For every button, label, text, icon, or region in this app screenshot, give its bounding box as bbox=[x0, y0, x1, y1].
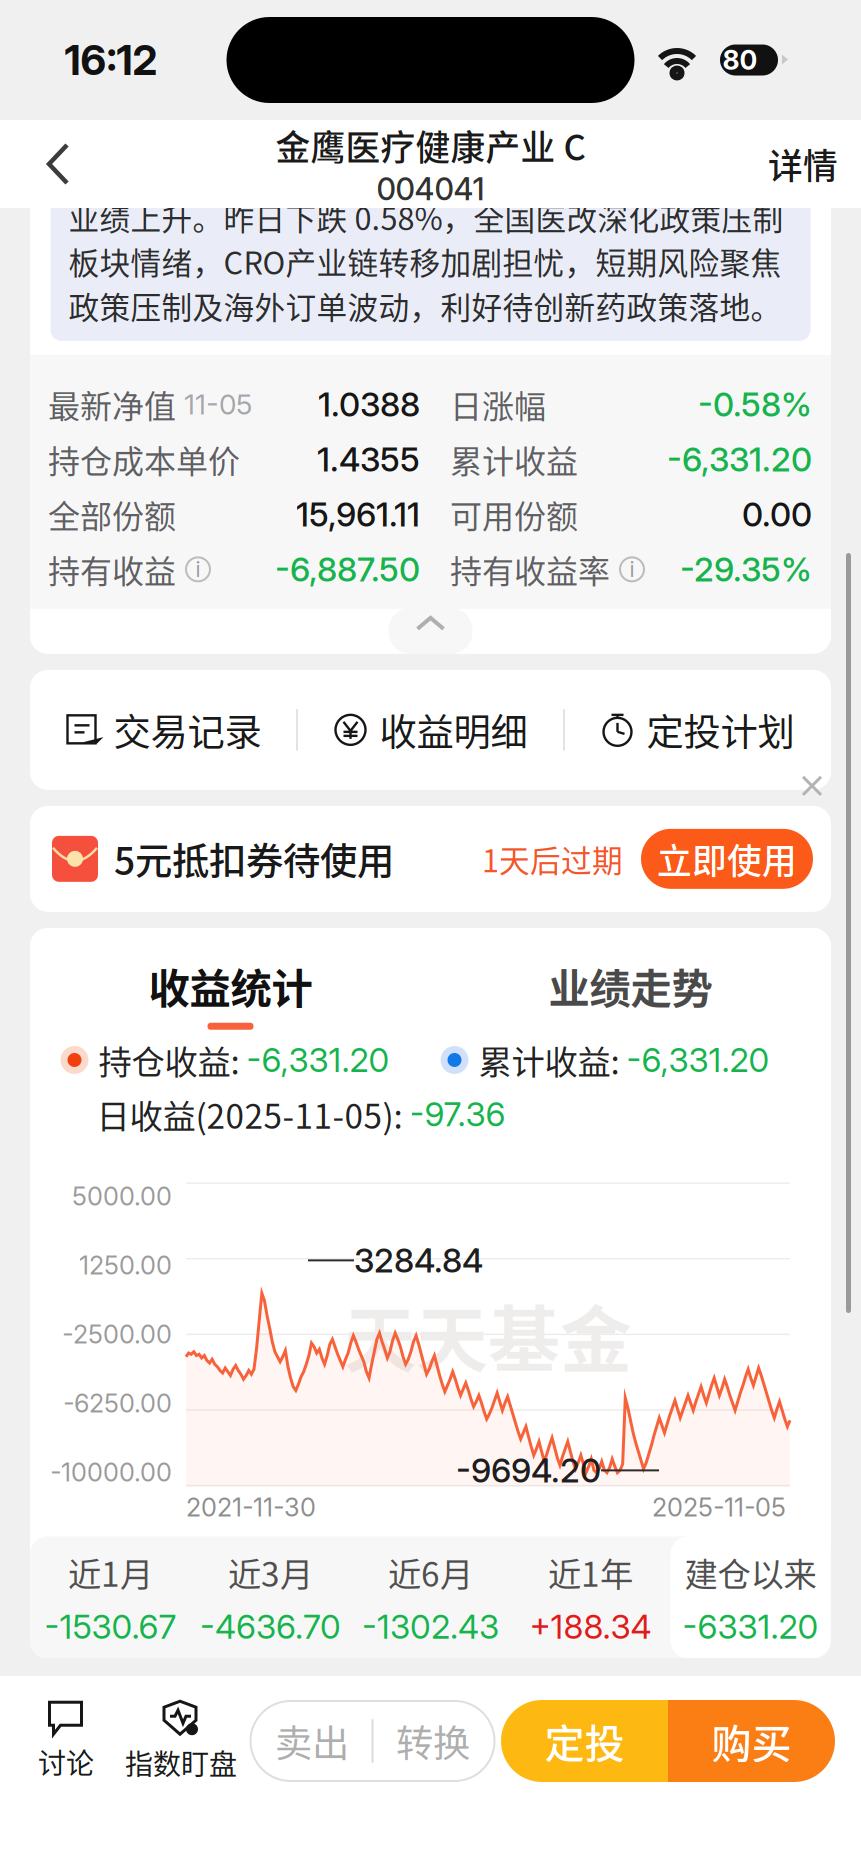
staticText: 1.0388 bbox=[318, 384, 420, 424]
button[interactable]: 业绩走势 bbox=[430, 962, 830, 1024]
staticText: -6,887.50 bbox=[275, 549, 420, 589]
button[interactable]: 近1月 bbox=[30, 1536, 190, 1658]
staticText: 购买 bbox=[711, 1712, 791, 1770]
button[interactable]: 立即使用 bbox=[641, 829, 813, 889]
staticText: 天天基金 bbox=[344, 1282, 632, 1386]
staticText: 累计收益: bbox=[478, 1036, 626, 1084]
staticText: 持仓收益: bbox=[98, 1036, 246, 1084]
staticText: 15,961.11 bbox=[296, 494, 420, 534]
staticText: 0.00 bbox=[742, 494, 812, 534]
staticText: 1天后过期 bbox=[482, 837, 623, 881]
staticText: i bbox=[195, 556, 200, 582]
staticText: 2021-11-30 bbox=[186, 1492, 316, 1523]
button[interactable]: 收益统计 bbox=[30, 962, 430, 1024]
staticText: 近6月 bbox=[388, 1548, 473, 1596]
staticText: 近1月 bbox=[68, 1548, 153, 1596]
staticText: 持有收益 bbox=[48, 546, 176, 592]
button[interactable]: 近1年 bbox=[510, 1536, 670, 1658]
staticText: 立即使用 bbox=[657, 834, 797, 884]
button[interactable]: 返回 bbox=[0, 120, 116, 208]
staticText: 004041 bbox=[376, 170, 484, 208]
staticText: 日涨幅 bbox=[450, 381, 546, 427]
staticText: 业绩走势 bbox=[548, 956, 712, 1016]
staticText: -9694.20 bbox=[456, 1450, 601, 1490]
button[interactable]: 指数盯盘 bbox=[118, 1686, 244, 1796]
button[interactable]: 收起 bbox=[388, 608, 472, 654]
staticText: 定投计划 bbox=[646, 703, 794, 757]
button[interactable]: 卖出 bbox=[252, 1701, 371, 1781]
button[interactable]: 转换 bbox=[373, 1701, 492, 1781]
staticText: -6,331.20 bbox=[667, 439, 812, 479]
button[interactable]: 建仓以来 bbox=[670, 1536, 830, 1658]
staticText: -29.35% bbox=[680, 549, 812, 589]
button[interactable]: 交易记录 bbox=[31, 670, 296, 790]
staticText: 2025-11-05 bbox=[652, 1492, 786, 1523]
button[interactable]: 定投 bbox=[501, 1700, 668, 1782]
button[interactable]: 收益明细 bbox=[298, 670, 563, 790]
staticText: -10000.00 bbox=[50, 1457, 172, 1488]
staticText: 1250.00 bbox=[79, 1250, 172, 1281]
staticText: -0.58% bbox=[698, 384, 812, 424]
staticText: -1302.43 bbox=[362, 1606, 499, 1647]
staticText: -4636.70 bbox=[200, 1606, 341, 1647]
staticText: 近1年 bbox=[548, 1548, 633, 1596]
button[interactable]: 购买 bbox=[668, 1700, 835, 1782]
staticText: 近3月 bbox=[228, 1548, 313, 1596]
staticText: +188.34 bbox=[529, 1606, 651, 1647]
staticText: -97.36 bbox=[409, 1094, 505, 1134]
staticText: 收益明细 bbox=[379, 703, 527, 757]
staticText: 指数盯盘 bbox=[125, 1742, 237, 1783]
staticText: 转换 bbox=[396, 1714, 470, 1768]
staticText: 最新净值 bbox=[48, 381, 176, 427]
staticText: 11-05 bbox=[176, 387, 252, 421]
staticText: -6,331.20 bbox=[626, 1040, 769, 1080]
staticText: -1530.67 bbox=[44, 1606, 176, 1647]
staticText: 日收益(2025-11-05): bbox=[96, 1090, 409, 1138]
staticText: 收益统计 bbox=[148, 956, 312, 1016]
staticText: 80 bbox=[722, 44, 757, 76]
staticText: -6331.20 bbox=[682, 1606, 818, 1647]
button[interactable]: 关闭 bbox=[799, 773, 831, 799]
staticText: -6,331.20 bbox=[246, 1040, 389, 1080]
button[interactable]: 近3月 bbox=[190, 1536, 350, 1658]
staticText: 建仓以来 bbox=[684, 1548, 816, 1596]
staticText: 持有收益率 bbox=[450, 546, 610, 592]
staticText: 3284.84 bbox=[354, 1240, 483, 1280]
button[interactable]: 近6月 bbox=[350, 1536, 510, 1658]
staticText: 金鹰医疗健康产业 C bbox=[275, 120, 585, 170]
staticText: -6250.00 bbox=[63, 1388, 172, 1419]
staticText: 卖出 bbox=[275, 1714, 349, 1768]
button[interactable]: 讨论 bbox=[14, 1686, 118, 1796]
staticText: 持仓成本单价 bbox=[48, 436, 240, 482]
staticText: 详情 bbox=[768, 139, 838, 189]
staticText: 定投 bbox=[544, 1712, 624, 1770]
staticText: 讨论 bbox=[38, 1741, 94, 1782]
button[interactable]: 定投计划 bbox=[565, 670, 830, 790]
button[interactable]: 详情 bbox=[745, 120, 861, 208]
staticText: i bbox=[629, 556, 634, 582]
staticText: 5元抵扣券待使用 bbox=[114, 832, 394, 886]
staticText: 全部份额 bbox=[48, 491, 176, 537]
staticText: 累计收益 bbox=[450, 436, 578, 482]
staticText: 5000.00 bbox=[72, 1181, 172, 1212]
staticText: 16:12 bbox=[64, 35, 157, 85]
staticText: 交易记录 bbox=[113, 703, 261, 757]
staticText: -2500.00 bbox=[62, 1319, 172, 1350]
staticText: 可用份额 bbox=[450, 491, 578, 537]
staticText: 业绩上升。昨日下跌 0.58%，全国医改深化政策压制板块情绪，CRO产业链转移加… bbox=[68, 195, 783, 328]
staticText: 1.4355 bbox=[317, 439, 420, 479]
